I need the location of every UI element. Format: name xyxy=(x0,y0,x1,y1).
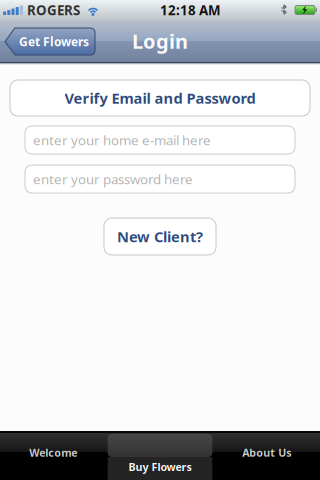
staticText: New Client? xyxy=(117,227,203,246)
staticText: 12:18 AM xyxy=(160,1,221,19)
staticText: About Us xyxy=(242,445,291,460)
staticText: Welcome xyxy=(29,445,77,460)
staticText: Login xyxy=(132,28,188,54)
staticText: Verify Email and Password xyxy=(64,88,255,108)
button[interactable]: Verify Email and Password xyxy=(0,80,320,116)
staticText: Get Flowers xyxy=(19,33,89,49)
button[interactable]: Get Flowers xyxy=(5,28,95,55)
staticText: ROGERS xyxy=(27,1,80,19)
button[interactable]: About Us xyxy=(213,431,320,480)
button[interactable]: New Client? xyxy=(104,218,216,255)
button[interactable]: Welcome xyxy=(0,431,107,480)
staticText: enter your password here xyxy=(33,170,193,188)
staticText: enter your home e-mail here xyxy=(33,131,211,149)
button[interactable]: Buy Flowers xyxy=(107,431,213,480)
staticText: Buy Flowers xyxy=(128,460,191,474)
